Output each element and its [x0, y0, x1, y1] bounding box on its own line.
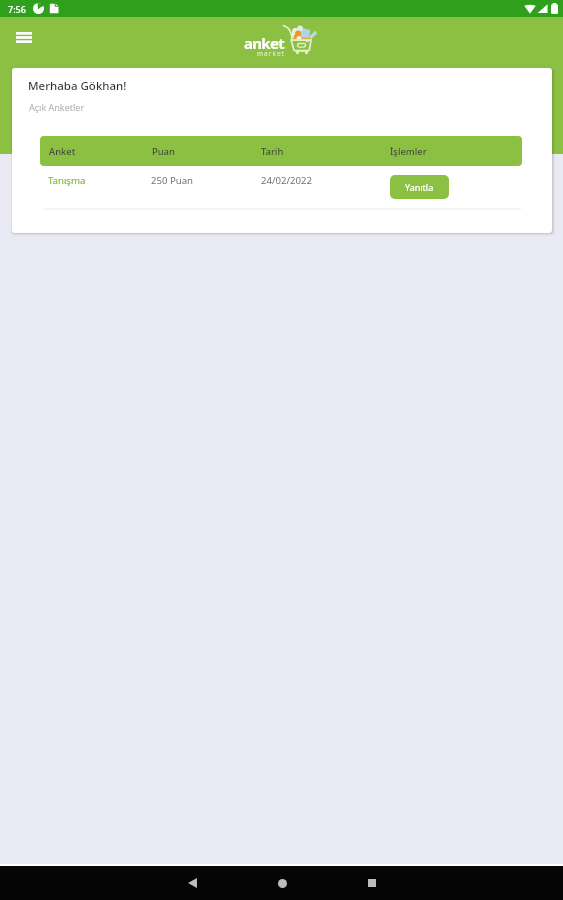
button[interactable]: Menu: [8, 21, 40, 53]
button[interactable]: Yanıtla: [390, 175, 449, 199]
staticText: Tanışma: [48, 174, 86, 187]
staticText: 250 Puan: [151, 174, 194, 187]
staticText: Yanıtla: [405, 181, 434, 193]
button[interactable]: Home: [258, 866, 306, 900]
staticText: anket: [244, 33, 285, 53]
staticText: 7:56: [8, 3, 26, 15]
staticText: Tarih: [261, 145, 284, 158]
button[interactable]: Back: [168, 866, 216, 900]
staticText: Merhaba Gökhan!: [28, 78, 127, 94]
button[interactable]: Recent apps: [348, 866, 396, 900]
staticText: Puan: [152, 145, 175, 158]
staticText: 24/02/2022: [261, 174, 313, 187]
staticText: market: [257, 49, 285, 58]
staticText: Anket: [49, 145, 76, 158]
staticText: İşlemler: [390, 145, 427, 158]
staticText: Açık Anketler: [29, 101, 85, 113]
button[interactable]: Tanışma: [44, 170, 90, 191]
